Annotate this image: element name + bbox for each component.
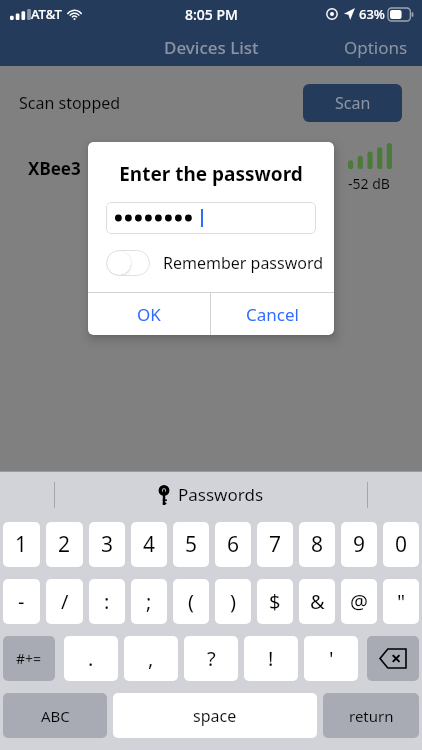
button[interactable]: Cancel [211,293,334,335]
button[interactable]: Backspace [367,636,419,681]
staticText: / [61,588,69,615]
staticText: #+= [16,649,42,668]
staticText: - [18,588,25,615]
staticText: $ [269,588,281,615]
button[interactable]: @ [341,579,377,624]
staticText: & [310,588,325,615]
button[interactable]: 5 [173,522,209,567]
button[interactable]: ; [131,579,167,624]
button[interactable]: 1 [3,522,40,567]
button[interactable]: 9 [341,522,377,567]
button[interactable]: - [3,579,40,624]
staticText: ) [230,588,236,615]
button[interactable]: 3 [89,522,125,567]
staticText: ABC [41,706,70,726]
button[interactable]: ' [304,636,358,681]
staticText: 8:05 PM [185,5,238,24]
staticText: ? [207,645,216,672]
button[interactable]: Scan [303,84,402,122]
staticText: @ [350,588,368,615]
button[interactable]: return [323,693,419,738]
button[interactable]: ABC [3,693,107,738]
staticText: Options [344,36,408,59]
button[interactable]: OK [88,293,210,335]
button[interactable]: , [124,636,178,681]
staticText: AT&T [31,5,62,23]
staticText: Scan [335,92,371,114]
button[interactable]: ? [184,636,238,681]
staticText: Remember password [163,252,324,274]
staticText: ; [146,588,152,615]
staticText: Devices List [164,36,259,59]
other: Passwords [158,484,170,506]
staticText: XBee3 [28,157,81,180]
button[interactable]: 8 [299,522,335,567]
staticText: 63% [359,5,385,23]
button[interactable]: 6 [215,522,251,567]
button[interactable]: Remember password [106,250,324,276]
staticText: space [193,705,237,727]
staticText: , [148,645,154,672]
button[interactable]: 2 [46,522,83,567]
staticText: Passwords [178,483,264,506]
staticText: 5 [185,530,198,559]
staticText: 6 [227,530,240,559]
staticText: Cancel [246,303,299,326]
button[interactable]: ( [173,579,209,624]
staticText: 4 [143,530,156,559]
button[interactable]: : [89,579,125,624]
staticText: 3 [101,530,114,559]
staticText: ( [188,588,194,615]
staticText: -52 dB [348,174,390,193]
button[interactable]: Options [330,30,422,65]
staticText: : [104,588,110,615]
staticText: return [349,706,394,726]
button[interactable]: & [299,579,335,624]
staticText: OK [137,303,161,326]
staticText: . [88,645,94,672]
staticText: 1 [15,530,28,559]
staticText: 8 [311,530,324,559]
button[interactable]: / [46,579,83,624]
staticText: ' [329,645,334,672]
button[interactable]: . [64,636,118,681]
staticText: Enter the password [102,161,320,187]
button[interactable]: 4 [131,522,167,567]
staticText: 9 [353,530,366,559]
staticText: 0 [395,530,408,559]
button[interactable]: 0 [383,522,419,567]
staticText: 2 [58,530,71,559]
button[interactable]: $ [257,579,293,624]
staticText: " [397,588,406,615]
staticText: Scan stopped [19,92,121,114]
button[interactable]: ! [244,636,298,681]
button[interactable]: 7 [257,522,293,567]
button[interactable]: #+= [3,636,55,681]
button[interactable]: ) [215,579,251,624]
button[interactable]: " [383,579,419,624]
staticText: ! [268,645,274,672]
button[interactable]: space [113,693,317,738]
button[interactable]: Passwords [158,483,264,506]
button[interactable] [106,202,316,234]
staticText: 7 [269,530,282,559]
